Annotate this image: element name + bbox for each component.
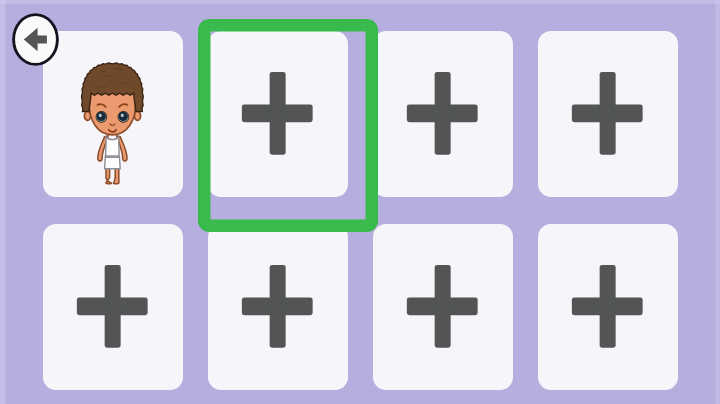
button[interactable]: Add character [373, 31, 513, 197]
button[interactable]: Add character [373, 224, 513, 390]
button[interactable]: Back [12, 13, 59, 66]
button[interactable]: Add character [208, 224, 348, 390]
button[interactable]: Add character [43, 224, 183, 390]
button[interactable]: Character 1 [43, 31, 183, 197]
button[interactable]: Add character [208, 31, 348, 197]
button[interactable]: Add character [538, 31, 678, 197]
button[interactable]: Add character [538, 224, 678, 390]
button[interactable]: Selected slot [198, 19, 378, 232]
